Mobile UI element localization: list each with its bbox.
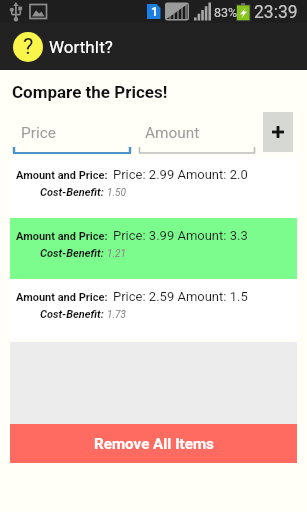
button[interactable]: Remove All Items	[10, 424, 297, 463]
staticText: Price	[21, 124, 56, 142]
staticText: Amount and Price:	[16, 291, 108, 304]
button[interactable]: Add item	[263, 112, 293, 152]
staticText: Price: 3.99 Amount: 3.3	[113, 228, 248, 243]
staticText: ?	[23, 34, 34, 60]
staticText: Amount and Price:	[16, 230, 108, 243]
staticText: Amount	[145, 124, 200, 142]
button[interactable]: Amount and Price:	[10, 157, 297, 218]
staticText: Cost-Benefit:	[40, 186, 104, 199]
staticText: Cost-Benefit:	[40, 308, 104, 321]
staticText: Amount and Price:	[16, 169, 108, 182]
staticText: Price: 2.99 Amount: 2.0	[113, 167, 248, 182]
staticText: Cost-Benefit:	[40, 247, 104, 260]
button[interactable]: Amount and Price:	[10, 218, 297, 279]
staticText: 1.73	[107, 309, 126, 321]
staticText: Compare the Prices!	[12, 82, 168, 102]
staticText: 1	[151, 5, 158, 19]
staticText: 83%	[214, 5, 238, 20]
staticText: 23:39	[254, 2, 298, 23]
staticText: WorthIt?	[49, 37, 113, 57]
staticText: Price: 2.59 Amount: 1.5	[113, 289, 248, 304]
staticText: 1.50	[107, 187, 126, 199]
staticText: 1.21	[107, 248, 126, 260]
staticText: Remove All Items	[94, 435, 214, 453]
button[interactable]: Amount and Price:	[10, 279, 297, 340]
